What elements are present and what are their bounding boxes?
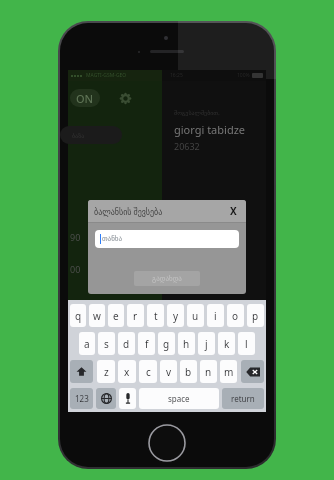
staticText: g	[163, 337, 170, 351]
button[interactable]: v	[160, 360, 177, 383]
staticText: გადახდა	[152, 275, 182, 283]
staticText: e	[113, 309, 119, 323]
button[interactable]: თანხა	[95, 230, 239, 248]
button[interactable]: j	[198, 332, 215, 355]
staticText: l	[245, 337, 248, 351]
button[interactable]: Backspace	[241, 360, 264, 383]
staticText: x	[124, 365, 130, 379]
button[interactable]: g	[158, 332, 175, 355]
button[interactable]: Close	[226, 204, 240, 218]
staticText: 20632	[174, 140, 200, 152]
staticText: MAGTI-GSM-GEO	[86, 72, 127, 79]
button[interactable]: Shift	[70, 360, 93, 383]
button[interactable]: t	[147, 304, 164, 327]
staticText: d	[123, 337, 130, 351]
button[interactable]: w	[89, 304, 105, 327]
staticText: X	[230, 204, 237, 218]
staticText: j	[205, 337, 208, 351]
button[interactable]: u	[187, 304, 204, 327]
button[interactable]: c	[139, 360, 157, 383]
button[interactable]: h	[178, 332, 195, 355]
staticText: მოგესალმებით,	[174, 109, 220, 117]
staticText: n	[205, 365, 212, 379]
button[interactable]: f	[138, 332, 155, 355]
staticText: q	[75, 309, 82, 323]
button[interactable]: k	[218, 332, 235, 355]
staticText: k	[224, 337, 230, 351]
staticText: m	[224, 365, 234, 379]
button[interactable]: e	[108, 304, 124, 327]
button[interactable]: b	[180, 360, 197, 383]
button[interactable]: Dictation	[119, 388, 136, 409]
staticText: ON	[76, 91, 94, 106]
staticText: giorgi tabidze	[174, 122, 246, 137]
button[interactable]: q	[70, 304, 86, 327]
staticText: 123	[75, 393, 89, 404]
button[interactable]: p	[247, 304, 264, 327]
staticText: z	[104, 365, 109, 379]
button[interactable]: r	[127, 304, 144, 327]
staticText: ბალანსის შევსება	[94, 206, 226, 217]
staticText: v	[166, 365, 172, 379]
staticText: 100%	[237, 72, 250, 79]
button[interactable]: n	[200, 360, 217, 383]
staticText: return	[231, 393, 255, 404]
staticText: 90	[70, 231, 81, 243]
staticText: c	[146, 365, 151, 379]
staticText: b	[185, 365, 192, 379]
button[interactable]: return	[222, 388, 264, 409]
button[interactable]: space	[139, 388, 219, 409]
staticText: space	[168, 393, 190, 404]
button[interactable]: Change language	[96, 388, 116, 409]
button[interactable]: i	[207, 304, 224, 327]
staticText: t	[154, 309, 158, 323]
button[interactable]: Numbers	[70, 388, 93, 409]
staticText: w	[93, 309, 101, 323]
button[interactable]: s	[98, 332, 115, 355]
staticText: 00	[70, 263, 81, 275]
staticText: ბაზა	[72, 132, 85, 139]
staticText: f	[145, 337, 149, 351]
staticText: r	[133, 309, 138, 323]
button[interactable]: o	[227, 304, 244, 327]
staticText: s	[104, 337, 109, 351]
button[interactable]: l	[238, 332, 255, 355]
staticText: y	[173, 309, 179, 323]
staticText: 16:25	[170, 72, 183, 79]
button[interactable]: d	[118, 332, 135, 355]
button[interactable]: x	[118, 360, 136, 383]
button[interactable]: ბაზა	[60, 126, 122, 144]
staticText: p	[252, 309, 259, 323]
button[interactable]: გადახდა	[134, 271, 200, 286]
staticText: თანხა	[102, 235, 123, 243]
button[interactable]: Home	[147, 423, 187, 463]
button[interactable]: a	[79, 332, 95, 355]
staticText: u	[192, 309, 199, 323]
staticText: a	[84, 337, 90, 351]
staticText: i	[214, 309, 217, 323]
button[interactable]: z	[97, 360, 115, 383]
staticText: o	[232, 309, 239, 323]
button[interactable]: m	[220, 360, 237, 383]
button[interactable]: y	[167, 304, 184, 327]
staticText: h	[183, 337, 190, 351]
